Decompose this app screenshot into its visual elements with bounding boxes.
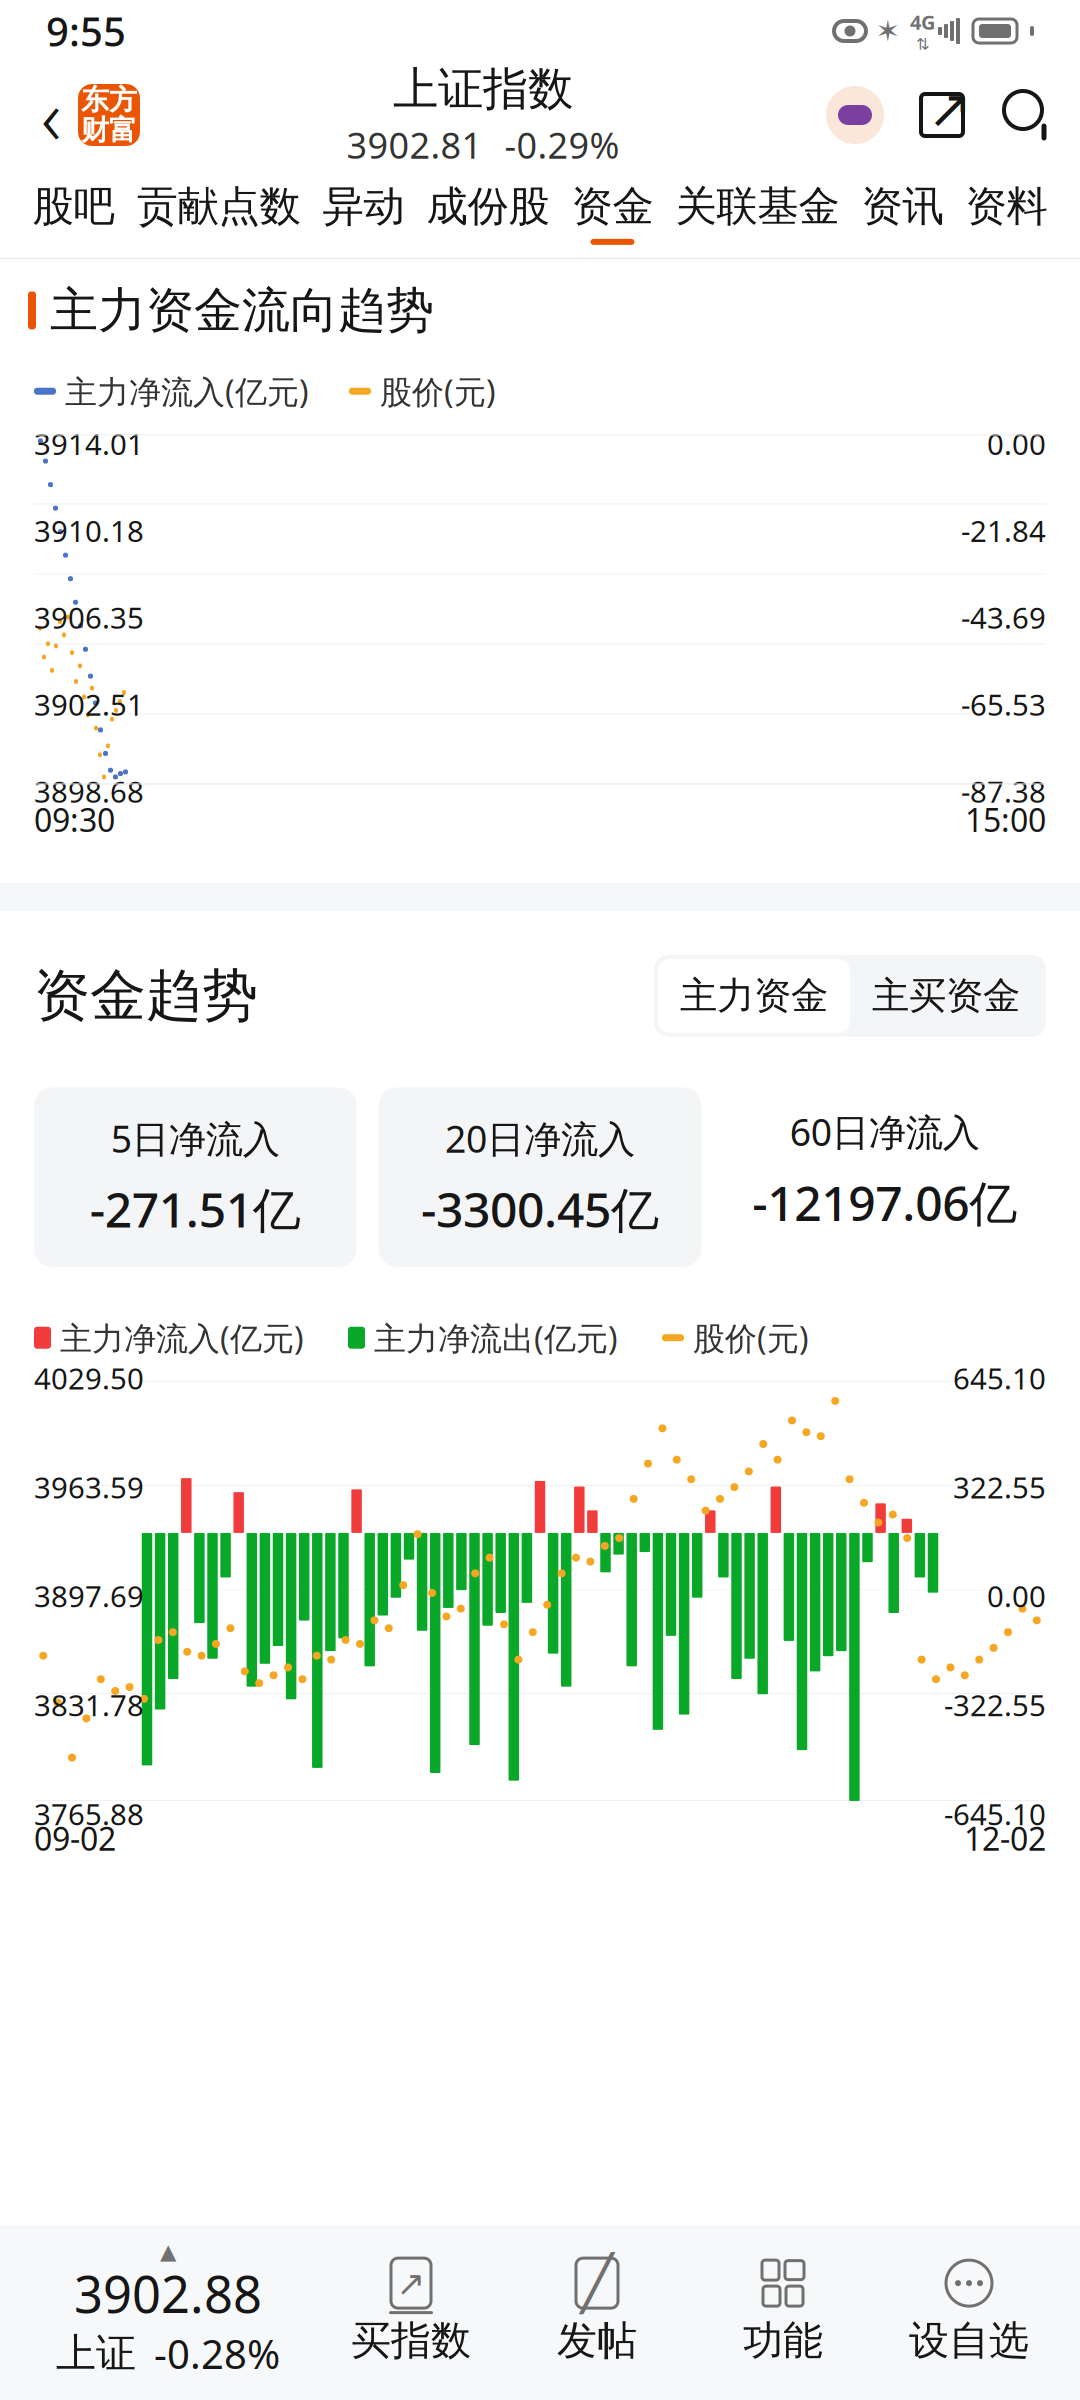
staticText: 主力资金	[680, 973, 828, 1019]
staticText: 资讯	[861, 181, 943, 232]
button[interactable]: 资讯	[850, 168, 954, 258]
staticText: 3831.78	[34, 1685, 144, 1724]
staticText: 主力资金流向趋势	[50, 281, 434, 340]
staticText: 股价(元)	[693, 1316, 809, 1359]
staticText: 3902.88	[74, 2260, 262, 2327]
staticText: 成份股	[426, 181, 549, 232]
button[interactable]: 设自选	[876, 2254, 1062, 2365]
button[interactable]: 5日净流入	[34, 1087, 357, 1284]
staticText: 3906.35	[34, 598, 144, 637]
button[interactable]: ↗	[318, 2254, 504, 2365]
staticText: 3963.59	[34, 1467, 144, 1506]
staticText: 设自选	[909, 2316, 1029, 2365]
staticText: -43.69	[961, 598, 1046, 637]
staticText: 上证指数	[393, 61, 573, 117]
staticText: ▲	[160, 2239, 176, 2264]
staticText: 异动	[322, 181, 404, 232]
button[interactable]: 功能	[690, 2254, 876, 2365]
staticText: -0.29%	[504, 121, 619, 169]
staticText: 资金	[571, 181, 653, 232]
staticText: 20日净流入	[445, 1113, 635, 1163]
staticText: 3765.88	[34, 1794, 144, 1833]
staticText: ✶	[875, 14, 900, 48]
staticText: -21.84	[961, 511, 1046, 550]
staticText: ╱	[581, 2253, 613, 2313]
staticText: 功能	[743, 2316, 823, 2365]
button[interactable]: 异动	[311, 168, 415, 258]
button[interactable]: 返回	[24, 75, 78, 155]
button[interactable]: 东方财富	[78, 83, 140, 147]
staticText: ⇅	[916, 35, 929, 53]
button[interactable]: 60日净流入	[723, 1081, 1046, 1290]
staticText: 3902.51	[34, 685, 144, 724]
staticText: 主买资金	[872, 973, 1020, 1019]
staticText: 0.00	[987, 1576, 1046, 1615]
staticText: 资料	[965, 181, 1047, 232]
staticText: 主力净流入(亿元)	[65, 370, 309, 412]
staticText: 资金趋势	[34, 961, 258, 1030]
staticText: 4029.50	[34, 1359, 144, 1398]
button[interactable]: 分享	[914, 87, 970, 143]
button[interactable]: 20日净流入	[379, 1087, 701, 1284]
button[interactable]: 资料	[954, 168, 1058, 258]
staticText: -0.28%	[154, 2327, 280, 2380]
button[interactable]: ▲	[18, 2239, 318, 2380]
staticText: 主力净流入(亿元)	[60, 1316, 304, 1359]
staticText: -87.38	[961, 772, 1046, 811]
staticText: 15:00	[965, 798, 1046, 841]
staticText: 12-02	[964, 1817, 1046, 1859]
staticText: 3914.01	[34, 424, 144, 463]
staticText: 贡献点数	[136, 181, 300, 232]
staticText: 股吧	[32, 181, 114, 232]
staticText: 4G	[910, 9, 935, 35]
staticText: 0.00	[987, 424, 1046, 463]
staticText: -12197.06亿	[752, 1170, 1017, 1234]
staticText: 3902.81	[346, 121, 482, 169]
button[interactable]: 资金	[560, 168, 664, 258]
staticText: 645.10	[953, 1359, 1046, 1398]
staticText: 5日净流入	[111, 1113, 280, 1163]
staticText: -271.51亿	[90, 1177, 301, 1241]
staticText: -3300.45亿	[421, 1177, 659, 1241]
button[interactable]: 主买资金	[850, 959, 1042, 1033]
staticText: 322.55	[953, 1467, 1046, 1506]
staticText: ↗	[927, 79, 972, 139]
staticText: 买指数	[351, 2316, 471, 2365]
staticText: 09-02	[34, 1817, 116, 1859]
staticText: 9:55	[46, 4, 126, 57]
staticText: 60日净流入	[790, 1107, 980, 1156]
staticText: -65.53	[961, 685, 1046, 724]
button[interactable]: 智能助手	[826, 86, 884, 144]
staticText: 3897.69	[34, 1576, 144, 1615]
button[interactable]: 成份股	[415, 168, 560, 258]
button[interactable]: 贡献点数	[125, 168, 311, 258]
staticText: 3910.18	[34, 511, 144, 550]
button[interactable]: 关联基金	[664, 168, 850, 258]
staticText: 3898.68	[34, 772, 144, 811]
staticText: 股价(元)	[380, 370, 496, 412]
staticText: -645.10	[944, 1794, 1046, 1833]
button[interactable]: 搜索	[1000, 87, 1056, 143]
staticText: -322.55	[944, 1685, 1046, 1724]
staticText: 发帖	[557, 2316, 637, 2365]
staticText: 上证	[56, 2329, 136, 2378]
staticText: 09:30	[34, 798, 115, 841]
staticText: 关联基金	[675, 181, 839, 232]
staticText: 财富	[81, 113, 137, 147]
button[interactable]: 股吧	[21, 168, 125, 258]
staticText: ‹	[41, 64, 61, 166]
staticText: ↗	[396, 2263, 425, 2303]
staticText: 东方	[81, 83, 137, 117]
staticText: 主力净流出(亿元)	[374, 1316, 618, 1359]
button[interactable]: 主力资金	[658, 959, 850, 1033]
button[interactable]: ╱	[504, 2254, 690, 2365]
